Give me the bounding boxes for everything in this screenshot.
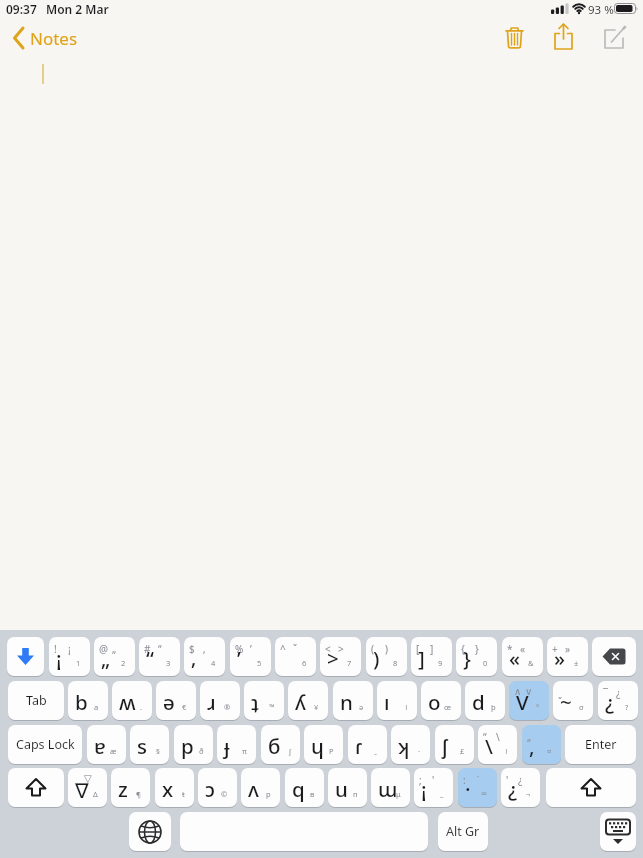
button[interactable]: u [328, 768, 367, 807]
button[interactable]: Notes [8, 24, 98, 52]
button[interactable]: ¯ [598, 681, 638, 720]
staticText: \ [496, 730, 500, 744]
button[interactable]: + [547, 637, 588, 676]
button[interactable]: ɥ [304, 725, 343, 764]
staticText: Tab [26, 692, 47, 709]
staticText: ¡ [68, 642, 71, 656]
staticText: } [463, 644, 471, 672]
button[interactable]: ʃ [435, 725, 474, 764]
button[interactable]: ı [377, 681, 417, 720]
staticText: + [552, 642, 558, 656]
button[interactable]: ɟ [217, 725, 256, 764]
staticText: Mon 2 Mar [46, 1, 109, 17]
button[interactable]: # [139, 637, 180, 676]
button[interactable]: z [111, 768, 150, 807]
button[interactable]: Caps Lock [8, 725, 82, 764]
staticText: ˇ [293, 642, 298, 656]
button[interactable]: x [155, 768, 194, 807]
button[interactable]: p [174, 725, 213, 764]
staticText: ɐ [94, 732, 106, 760]
button[interactable]: ʍ [112, 681, 152, 720]
button[interactable]: < [320, 637, 361, 676]
staticText: ? [625, 702, 629, 712]
staticText: ) [373, 644, 380, 672]
staticText: $ [189, 642, 195, 656]
staticText: ! [54, 642, 57, 656]
staticText: P [329, 746, 334, 756]
button[interactable] [8, 768, 64, 807]
button[interactable]: b [68, 681, 108, 720]
staticText: 0 [483, 658, 488, 668]
staticText: ’ [250, 642, 252, 656]
button[interactable]: Tab [8, 681, 64, 720]
button[interactable]: Enter [565, 725, 636, 764]
button[interactable] [550, 22, 577, 52]
button[interactable]: : [458, 768, 497, 807]
button[interactable]: “ [478, 725, 517, 764]
staticText: ∨ [525, 686, 533, 698]
button[interactable]: ; [414, 768, 453, 807]
button[interactable]: ˬ [553, 681, 593, 720]
staticText: _ [440, 789, 444, 799]
staticText: 4 [211, 658, 216, 668]
button[interactable] [600, 22, 628, 52]
staticText: ɔ [205, 775, 216, 803]
staticText: : [463, 773, 466, 787]
staticText: ™ [269, 702, 275, 712]
button[interactable]: ʌ [241, 768, 280, 807]
button[interactable]: o [421, 681, 461, 720]
button[interactable]: ɔ [198, 768, 237, 807]
button[interactable]: % [230, 637, 271, 676]
staticText: 3 [166, 658, 171, 668]
button[interactable]: * [502, 637, 543, 676]
button[interactable]: „ [522, 725, 561, 764]
staticText: ¿ [518, 773, 523, 787]
button[interactable]: Alt Gr [438, 812, 488, 851]
button[interactable]: { [456, 637, 497, 676]
button[interactable]: [ [411, 637, 452, 676]
button[interactable] [501, 24, 528, 52]
staticText: ɥ [311, 732, 324, 760]
button[interactable]: ɐ [87, 725, 126, 764]
button[interactable] [7, 637, 44, 676]
button[interactable]: @ [94, 637, 135, 676]
staticText: * [507, 642, 513, 656]
button[interactable]: $ [184, 637, 225, 676]
button[interactable]: ∧ [509, 681, 549, 720]
button[interactable]: ▽ [68, 768, 107, 807]
staticText: ' [506, 773, 509, 787]
button[interactable] [600, 812, 636, 851]
button[interactable] [546, 768, 636, 807]
staticText: \ [485, 732, 493, 760]
button[interactable]: ʎ [288, 681, 328, 720]
staticText: ° [536, 702, 540, 712]
button[interactable]: ^ [275, 637, 316, 676]
staticText: ¿ [508, 775, 518, 803]
staticText: ] [418, 644, 425, 672]
button[interactable]: ə [156, 681, 196, 720]
button[interactable] [180, 812, 428, 851]
staticText: 2 [121, 658, 126, 668]
button[interactable]: d [465, 681, 505, 720]
button[interactable]: ʞ [391, 725, 430, 764]
staticText: ǀ [405, 702, 408, 712]
button[interactable]: ʇ [244, 681, 284, 720]
staticText: ; [419, 773, 422, 787]
button[interactable]: q [285, 768, 324, 807]
button[interactable]: ! [49, 637, 90, 676]
button[interactable]: n [333, 681, 373, 720]
button[interactable]: ɹ [200, 681, 240, 720]
staticText: ‚ [191, 644, 197, 672]
staticText: 6 [302, 658, 307, 668]
button[interactable]: ' [501, 768, 540, 807]
button[interactable] [129, 812, 171, 851]
button[interactable]: s [130, 725, 169, 764]
button[interactable]: ɯ [371, 768, 410, 807]
button[interactable]: б [261, 725, 300, 764]
button[interactable]: ɾ [348, 725, 387, 764]
staticText: „ [112, 642, 117, 656]
button[interactable] [592, 637, 636, 676]
staticText: 5 [257, 658, 262, 668]
button[interactable]: ( [366, 637, 407, 676]
staticText: q [292, 775, 305, 803]
